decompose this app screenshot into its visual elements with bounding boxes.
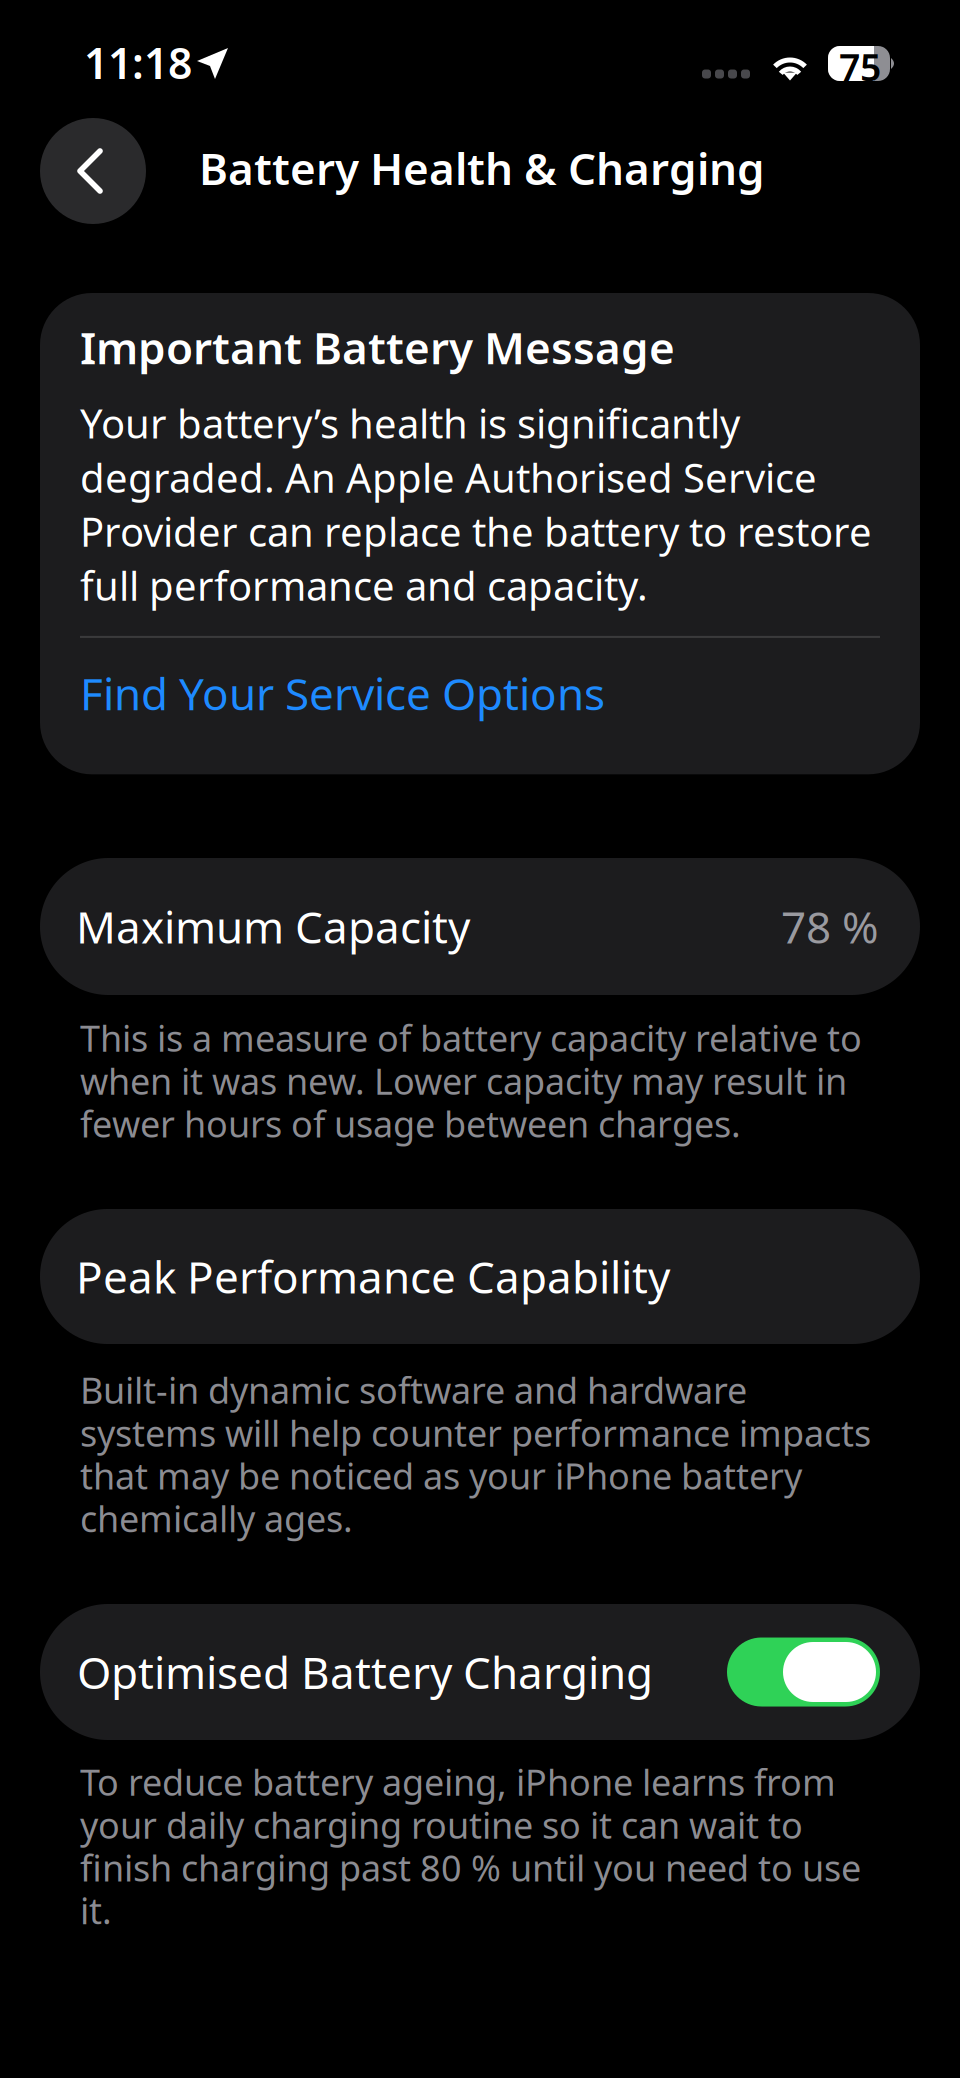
staticText: 75 [839, 42, 881, 92]
staticText: Maximum Capacity [76, 897, 470, 956]
staticText: Your battery’s health is significantly d… [80, 396, 872, 612]
button[interactable]: Maximum Capacity [40, 858, 920, 995]
button[interactable]: Peak Performance Capability [40, 1209, 920, 1344]
staticText: To reduce battery ageing, iPhone learns … [80, 1758, 861, 1934]
button[interactable]: Optimised Battery Charging, on [727, 1637, 880, 1706]
staticText: Peak Performance Capability [76, 1247, 670, 1306]
button[interactable]: Find Your Service Options [80, 664, 605, 722]
staticText: Optimised Battery Charging [77, 1643, 653, 1701]
staticText: Built-in dynamic software and hardware s… [80, 1366, 871, 1542]
staticText: Important Battery Message [80, 318, 675, 376]
staticText: Battery Health & Charging [199, 139, 765, 197]
staticText: 11:18 [84, 34, 192, 91]
staticText: This is a measure of battery capacity re… [80, 1014, 862, 1147]
button[interactable]: Back [40, 118, 146, 224]
staticText: 78 % [781, 897, 879, 956]
staticText: Find Your Service Options [80, 664, 605, 722]
